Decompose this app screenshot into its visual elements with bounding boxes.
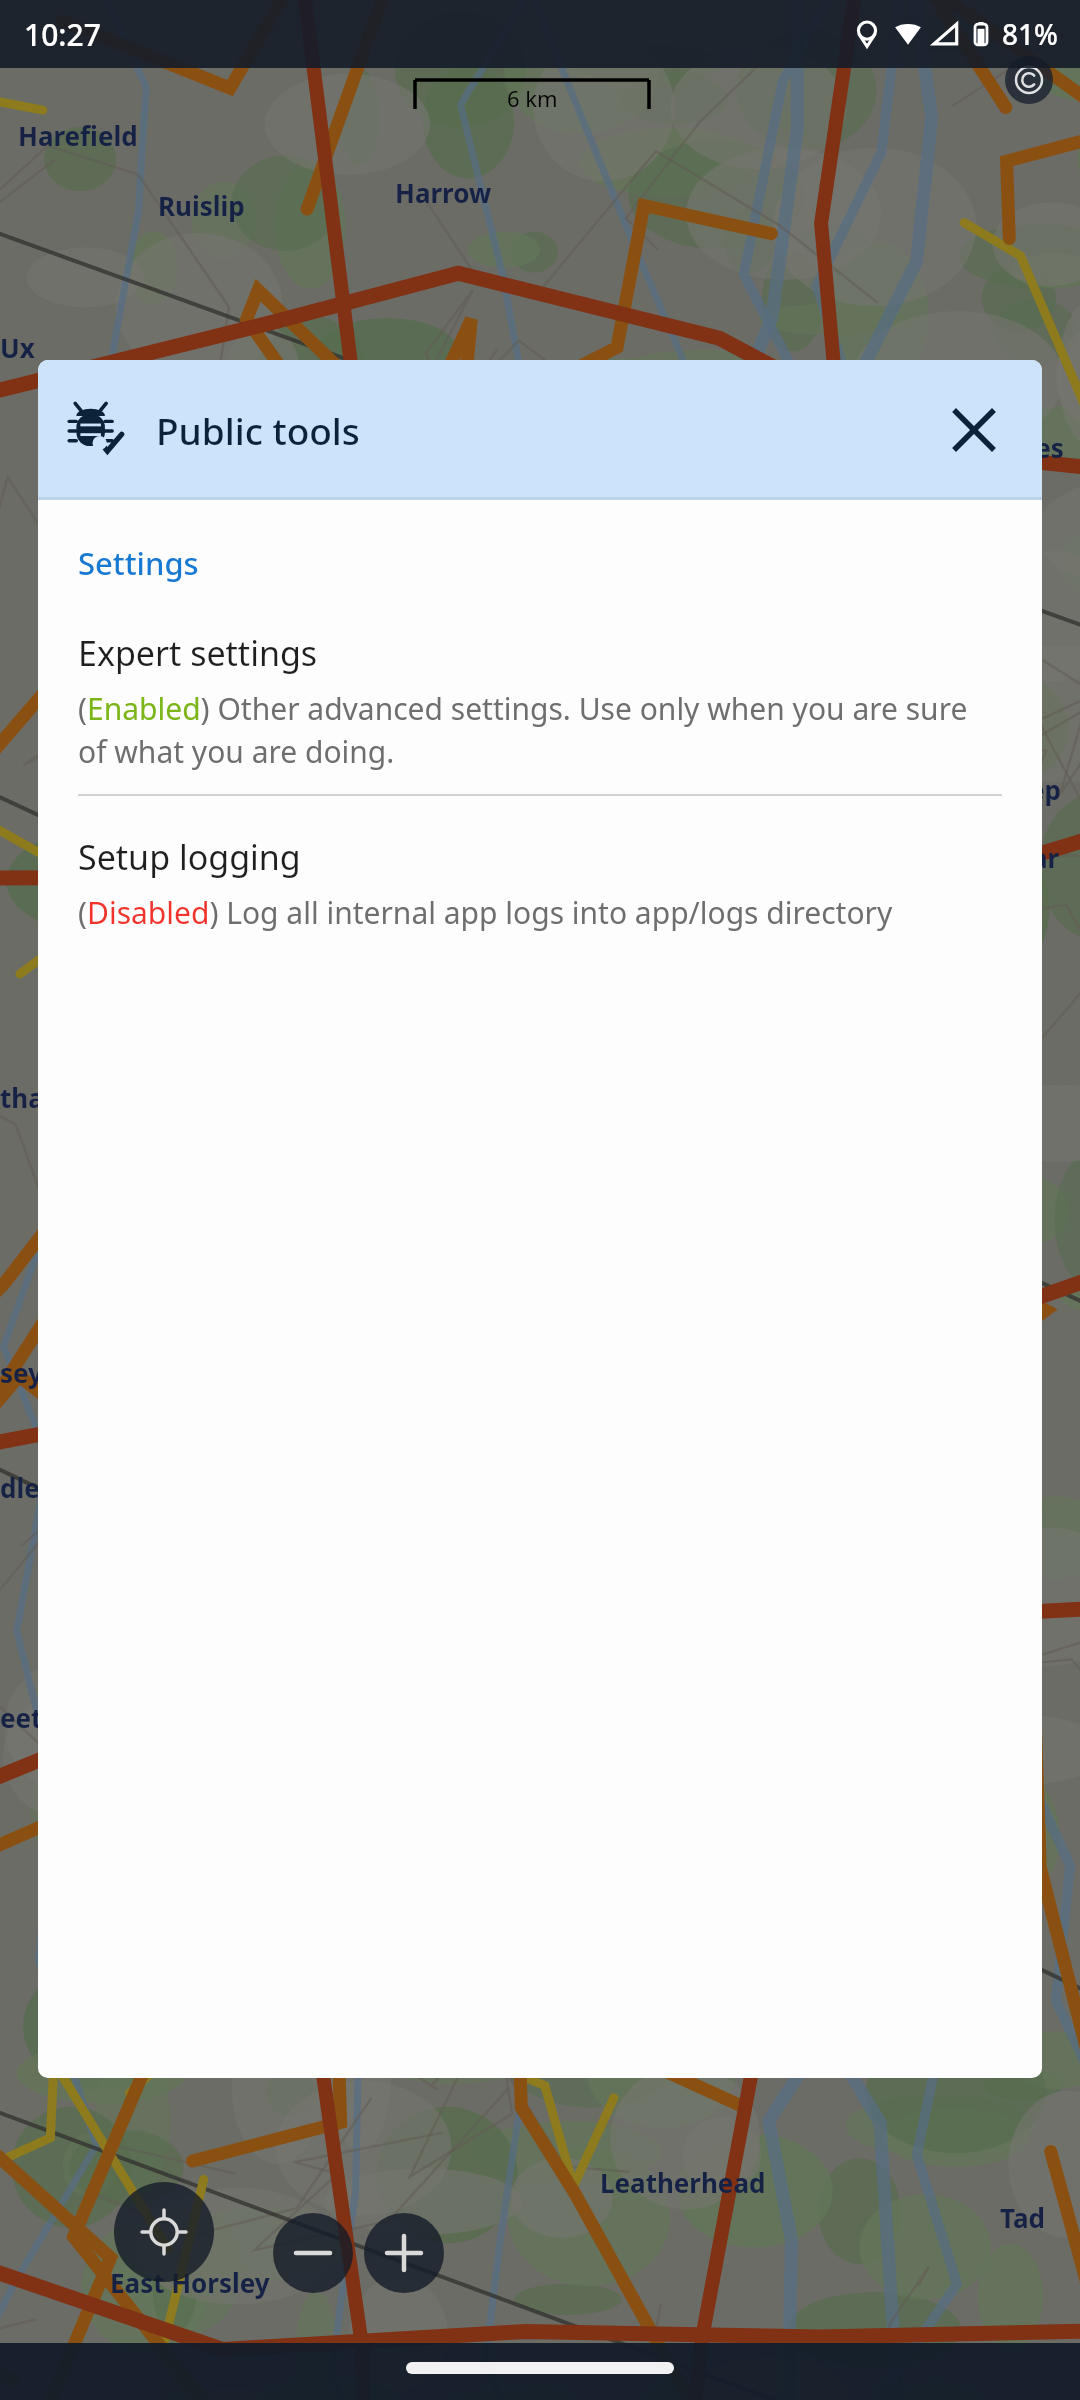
button[interactable]: Setup logging <box>78 834 1002 933</box>
staticText: Harrow <box>395 175 492 210</box>
staticText: Ux <box>0 330 35 365</box>
staticText: sey <box>0 1355 43 1390</box>
staticText: Leatherhead <box>600 2165 766 2200</box>
staticText: Setup logging <box>78 834 301 880</box>
staticText: Harefield <box>18 118 138 153</box>
button[interactable]: Close <box>932 388 1016 472</box>
staticText: Expert settings <box>78 630 318 676</box>
button[interactable]: My location <box>114 2182 214 2282</box>
staticText: 6 km <box>507 83 558 113</box>
staticText: hep <box>1012 772 1061 807</box>
staticText: Settings <box>78 542 199 584</box>
staticText: eet <box>0 1700 43 1735</box>
staticText: dles <box>0 1470 53 1505</box>
staticText: illes <box>1012 430 1064 465</box>
button[interactable]: Expert settings <box>78 630 1002 772</box>
staticText: Public tools <box>156 405 360 455</box>
staticText: 81% <box>1002 15 1058 53</box>
staticText: (Enabled) Other advanced settings. Use o… <box>78 688 1002 772</box>
button[interactable]: Zoom out <box>273 2213 353 2293</box>
staticText: Har <box>1012 840 1060 875</box>
staticText: than <box>0 1080 61 1115</box>
button[interactable]: Zoom in <box>364 2213 444 2293</box>
staticText: East Horsley <box>110 2265 270 2300</box>
staticText: Ruislip <box>158 188 245 223</box>
staticText: (Disabled) Log all internal app logs int… <box>78 892 893 933</box>
button[interactable]: Map data copyright <box>1005 56 1053 104</box>
staticText: Tad <box>1000 2200 1045 2235</box>
staticText: 10:27 <box>24 14 101 55</box>
